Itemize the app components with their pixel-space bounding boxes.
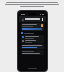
button[interactable]: Back [21,18,24,21]
button[interactable] [21,23,44,31]
button[interactable]: More options [41,18,44,21]
button[interactable] [21,39,44,43]
button[interactable] [21,35,44,39]
button[interactable] [21,50,44,55]
button[interactable] [21,44,44,49]
